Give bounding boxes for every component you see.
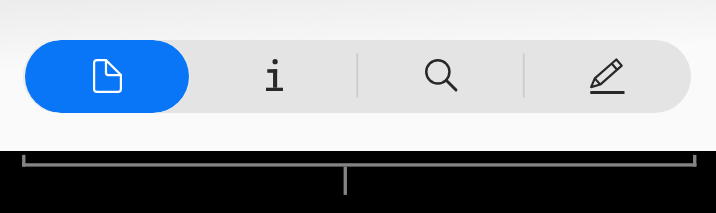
button[interactable]: Search <box>357 40 524 113</box>
button[interactable]: Edit <box>524 40 691 113</box>
button[interactable]: Document <box>23 40 190 113</box>
button[interactable]: Info <box>190 40 357 113</box>
